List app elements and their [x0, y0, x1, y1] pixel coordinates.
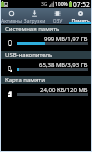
staticText: 999 МБ/1,97 ГБ: [44, 35, 88, 43]
staticText: 24,00 КБ/120 МБ: [40, 86, 88, 94]
staticText: Системная память: [5, 25, 60, 33]
button[interactable]: Загрузки: [23, 8, 46, 24]
button[interactable]: 65,38 МБ/3,93 ГБ: [0, 59, 92, 76]
staticText: ОЗУ: [46, 18, 69, 24]
staticText: 65,38 МБ/3,93 ГБ: [39, 61, 88, 69]
staticText: Активные: [0, 18, 23, 24]
staticText: 3G: [41, 1, 48, 8]
staticText: 100%: [55, 1, 68, 8]
button[interactable]: ОЗУ: [46, 8, 69, 24]
staticText: 07:52: [73, 0, 90, 8]
button[interactable]: Активные: [0, 8, 23, 24]
button[interactable]: 24,00 КБ/120 МБ: [0, 84, 92, 101]
staticText: Загрузки: [23, 18, 46, 24]
staticText: Карта памяти: [5, 76, 45, 84]
staticText: USB-накопитель: [5, 51, 53, 59]
staticText: Память: [69, 18, 92, 24]
button[interactable]: Память: [69, 8, 92, 24]
button[interactable]: 999 МБ/1,97 ГБ: [0, 33, 92, 50]
